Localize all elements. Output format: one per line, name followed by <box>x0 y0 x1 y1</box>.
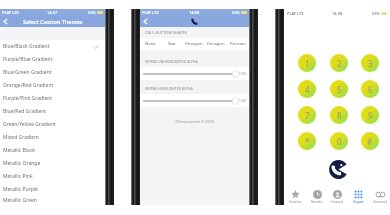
button[interactable]: Pacman <box>227 38 249 50</box>
staticText: Recents <box>311 200 323 204</box>
staticText: Metallic Purple <box>3 186 38 193</box>
button[interactable] <box>143 69 237 79</box>
staticText: 8 <box>337 110 342 121</box>
staticText: 1.00 <box>239 98 246 103</box>
staticText: Metallic Black <box>3 147 35 154</box>
staticText: 53% <box>232 10 240 15</box>
staticText: 53% <box>372 11 380 16</box>
button[interactable] <box>143 96 237 106</box>
button[interactable]: Blue/Black Gradient <box>0 40 105 53</box>
button[interactable]: Voicemail <box>369 188 390 205</box>
button[interactable]: Mixed Gradient <box>0 131 105 144</box>
button[interactable]: Keypad <box>348 188 369 205</box>
staticText: KEYPAD HIGHLIGHTED ALPHA <box>145 86 193 91</box>
button[interactable]: Call <box>329 160 348 179</box>
staticText: 14:58 <box>332 11 343 16</box>
button[interactable]: 9 <box>361 106 379 124</box>
staticText: KEYPAD UNHIGHLIGHTED ALPHA <box>145 59 198 64</box>
staticText: Voicemail <box>373 200 387 204</box>
staticText: 53% <box>88 10 96 15</box>
staticText: 2 <box>337 58 342 69</box>
button[interactable]: * <box>298 132 316 150</box>
staticText: # <box>367 136 373 147</box>
staticText: PLAY LTE <box>2 10 19 15</box>
button[interactable]: 1 <box>298 54 316 72</box>
staticText: 7 <box>305 110 310 121</box>
staticText: Hexagon <box>185 41 203 47</box>
staticText: Mixed Gradient <box>3 134 40 141</box>
button[interactable]: Blue/Green Gradient <box>0 66 105 79</box>
staticText: CALL BUTTON SHAPES <box>145 30 188 35</box>
staticText: Purple/Blue Gradient <box>3 56 53 63</box>
staticText: Decagon <box>207 41 225 47</box>
staticText: Select Custom Themes <box>23 18 83 25</box>
staticText: Contacts <box>331 200 344 204</box>
staticText: 5 <box>337 84 342 95</box>
button[interactable]: Green/Yellow Gradient <box>0 118 105 131</box>
staticText: Metallic Pink <box>3 173 33 180</box>
button[interactable]: Hexagon <box>183 38 205 50</box>
staticText: 0 <box>337 136 342 147</box>
button[interactable]: Back <box>140 16 151 27</box>
button[interactable]: # <box>361 132 379 150</box>
staticText: Keypad <box>353 200 364 204</box>
button[interactable]: Contacts <box>327 188 348 205</box>
button[interactable]: Back <box>0 16 11 27</box>
button[interactable]: Metallic Black <box>0 144 105 157</box>
staticText: PLAY LTE <box>287 11 304 16</box>
button[interactable]: Favorites <box>284 188 306 205</box>
button[interactable]: Metallic Orange <box>0 157 105 170</box>
staticText: 9 <box>368 110 373 121</box>
staticText: 3 <box>368 58 373 69</box>
button[interactable]: Recents <box>306 188 327 205</box>
staticText: 4 <box>305 84 310 95</box>
button[interactable]: 0 <box>330 132 348 150</box>
button[interactable]: Star <box>161 38 183 50</box>
staticText: 14:57 <box>47 10 58 15</box>
button[interactable]: Metallic Purple <box>0 183 105 196</box>
button[interactable]: Metallic Pink <box>0 170 105 183</box>
staticText: Blue/Green Gradient <box>3 69 52 76</box>
staticText: 14:58 <box>189 10 200 15</box>
staticText: Metallic Orange <box>3 160 41 167</box>
staticText: Green/Yellow Gradient <box>3 121 56 128</box>
button[interactable]: 8 <box>330 106 348 124</box>
staticText: * <box>305 136 310 147</box>
staticText: None <box>145 41 156 47</box>
button[interactable]: 6 <box>361 80 379 98</box>
button[interactable]: 2 <box>330 54 348 72</box>
button[interactable]: Blue/Red Gradient <box>0 105 105 118</box>
button[interactable]: 5 <box>330 80 348 98</box>
staticText: 1 <box>305 58 310 69</box>
button[interactable]: 7 <box>298 106 316 124</box>
button[interactable]: Orange/Red Gradient <box>0 79 105 92</box>
staticText: 6 <box>368 84 373 95</box>
button[interactable]: Metallic Green <box>0 196 105 205</box>
button[interactable]: Purple/Blue Gradient <box>0 53 105 66</box>
button[interactable]: 3 <box>361 54 379 72</box>
staticText: Star <box>168 41 176 47</box>
button[interactable]: Purple/Pink Gradient <box>0 92 105 105</box>
staticText: Metallic Green <box>3 197 37 204</box>
staticText: Orange/Red Gradient <box>3 82 54 89</box>
staticText: Purple/Pink Gradient <box>3 95 53 102</box>
staticText: Pacman <box>230 41 246 47</box>
staticText: Blue/Red Gradient <box>3 108 47 115</box>
button[interactable]: Decagon <box>205 38 227 50</box>
staticText: Favorites <box>289 200 302 204</box>
staticText: Blue/Black Gradient <box>3 43 50 50</box>
button[interactable]: 4 <box>298 80 316 98</box>
staticText: ©Devumentia © 2020 <box>140 119 249 124</box>
staticText: PLAY LTE <box>142 10 159 15</box>
button[interactable]: None <box>140 38 161 50</box>
staticText: 1.00 <box>239 71 246 76</box>
